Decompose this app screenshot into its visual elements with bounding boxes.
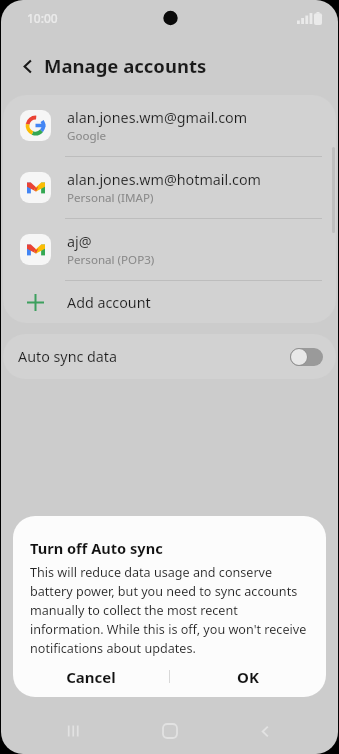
button[interactable]: Cancel <box>13 656 169 697</box>
other: Auto sync data toggle <box>290 348 323 366</box>
button[interactable]: alan.jones.wm@hotmail.com <box>3 157 336 218</box>
staticText: Auto sync data <box>18 347 118 366</box>
button[interactable]: Recents <box>51 708 97 754</box>
staticText: Personal (POP3) <box>67 252 155 268</box>
staticText: Google <box>67 128 107 144</box>
button[interactable]: aj@ <box>3 219 336 280</box>
button[interactable]: OK <box>169 656 326 697</box>
staticText: Manage accounts <box>44 53 207 78</box>
staticText: OK <box>237 667 259 687</box>
button[interactable]: Auto sync data <box>3 334 336 379</box>
button[interactable]: Back <box>11 49 45 83</box>
button[interactable]: Home <box>147 708 193 754</box>
staticText: Add account <box>67 293 151 312</box>
staticText: Turn off Auto sync <box>30 538 163 558</box>
staticText: alan.jones.wm@gmail.com <box>67 108 248 127</box>
staticText: This will reduce data usage and conserve… <box>30 564 311 656</box>
staticText: Cancel <box>66 667 116 687</box>
staticText: 10:00 <box>27 10 58 26</box>
staticText: aj@ <box>67 232 92 251</box>
button[interactable]: Add account <box>3 281 336 323</box>
staticText: alan.jones.wm@hotmail.com <box>67 170 261 189</box>
button[interactable]: alan.jones.wm@gmail.com <box>3 95 336 156</box>
staticText: Personal (IMAP) <box>67 190 154 206</box>
